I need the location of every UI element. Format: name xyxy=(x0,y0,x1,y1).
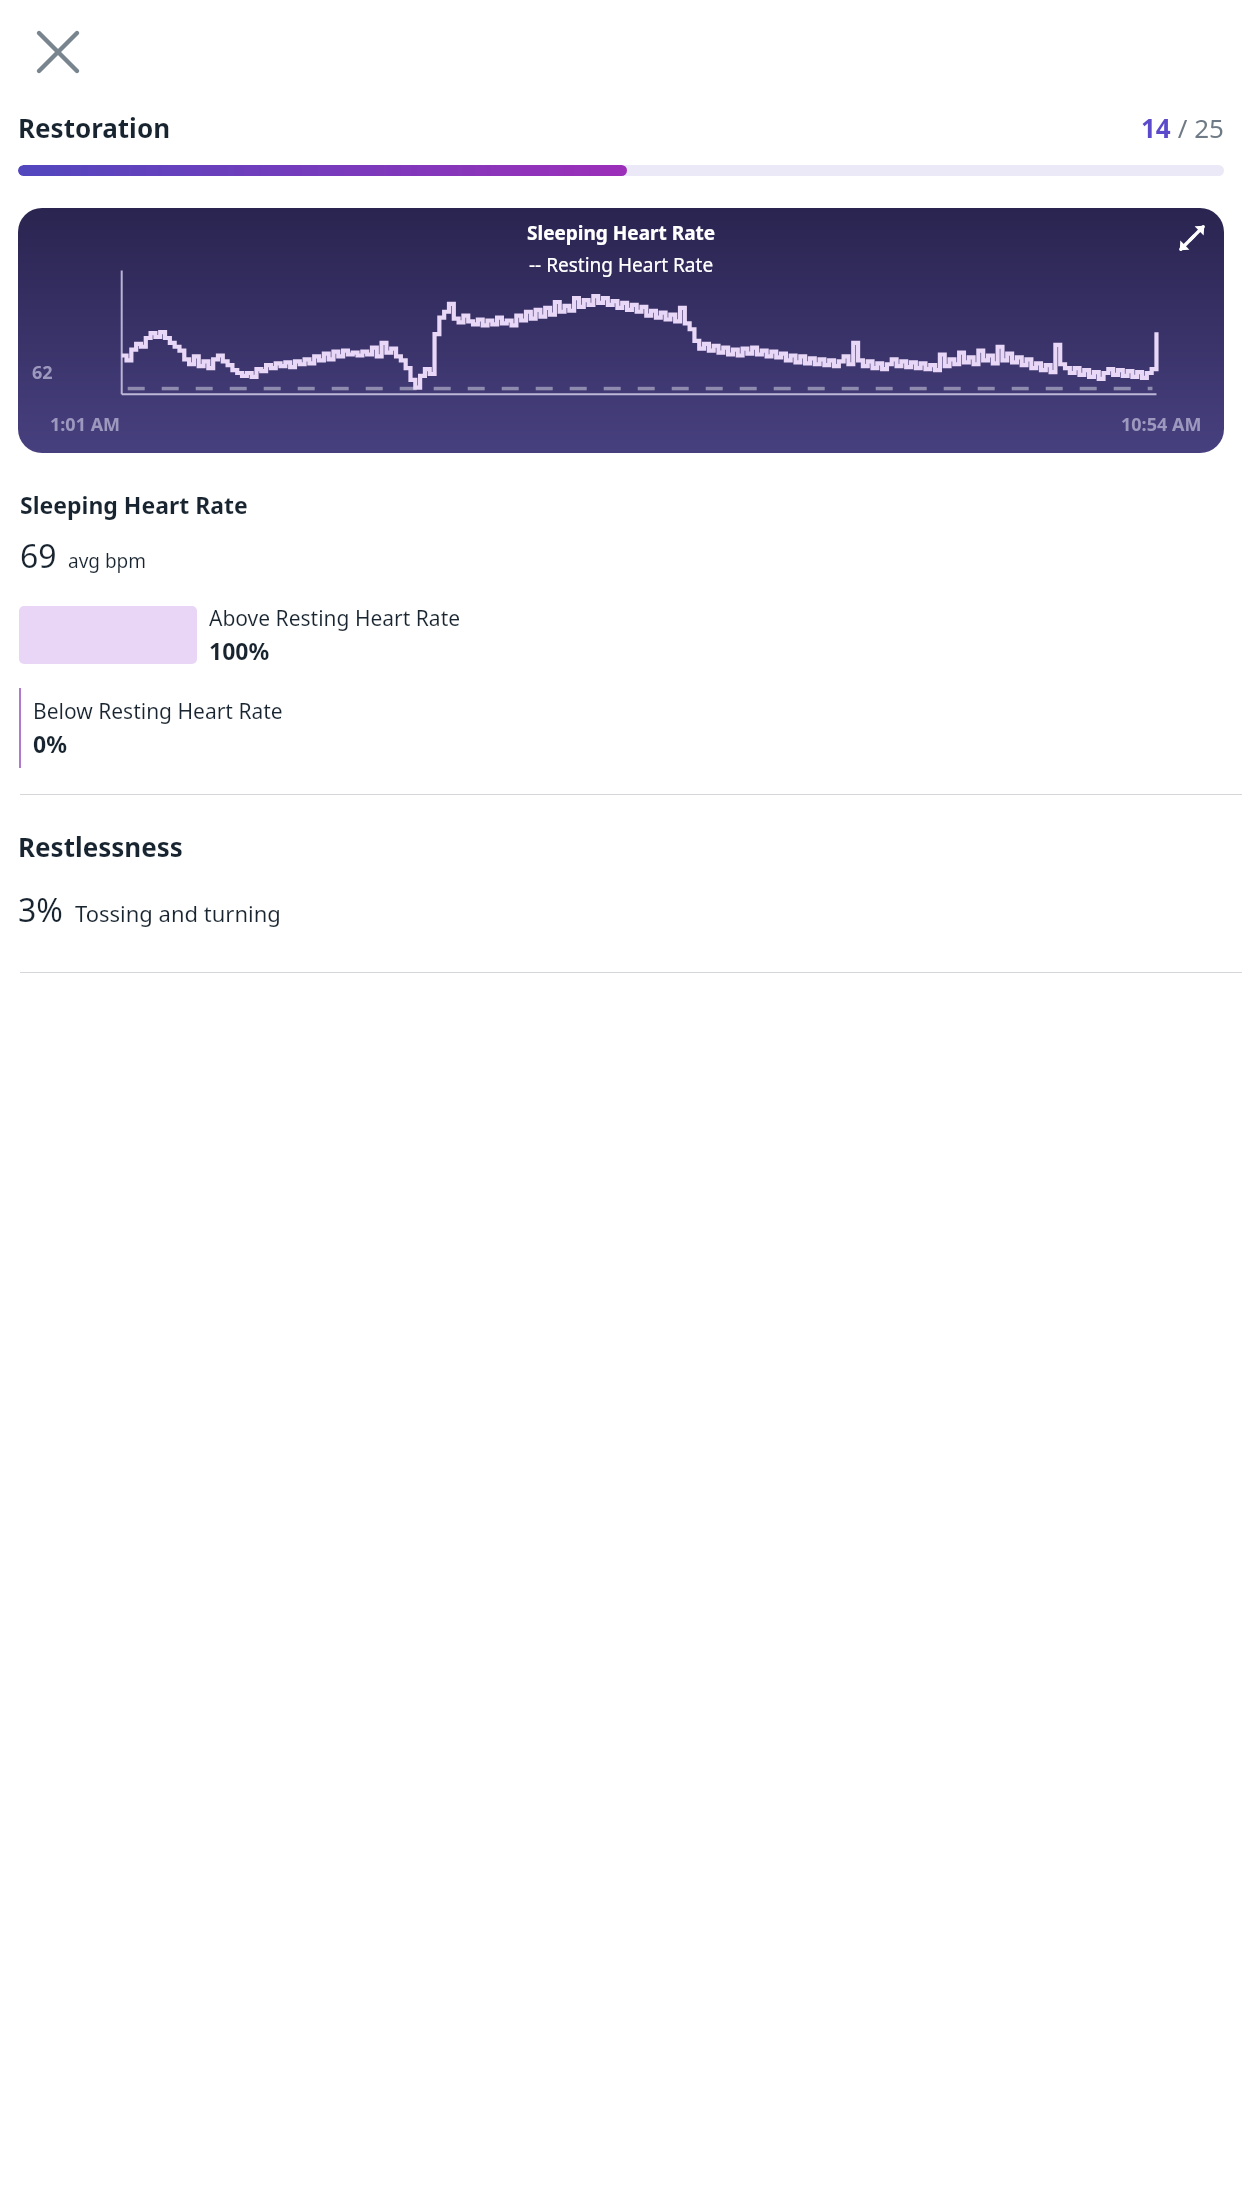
staticText: 14 xyxy=(1141,110,1171,145)
staticText: 100% xyxy=(209,635,270,666)
button[interactable]: Below Resting Heart Rate xyxy=(19,688,1222,768)
staticText: 1:01 AM xyxy=(50,412,121,437)
button[interactable]: Sleeping Heart Rate xyxy=(18,208,1224,453)
button[interactable]: Expand chart xyxy=(1170,216,1214,260)
staticText: / 25 xyxy=(1171,110,1224,145)
staticText: 69 xyxy=(20,534,57,578)
staticText: 10:54 AM xyxy=(1121,412,1202,437)
staticText: 62 xyxy=(32,360,53,385)
staticText: avg bpm xyxy=(68,548,147,574)
staticText: Restlessness xyxy=(18,829,183,864)
staticText: 0% xyxy=(33,728,67,759)
staticText: 3% xyxy=(18,888,63,932)
staticText: -- Resting Heart Rate xyxy=(529,252,714,278)
staticText: Tossing and turning xyxy=(75,898,281,928)
button[interactable]: Close xyxy=(22,16,94,88)
staticText: Restoration xyxy=(18,110,171,145)
staticText: Sleeping Heart Rate xyxy=(527,220,716,246)
staticText: Sleeping Heart Rate xyxy=(20,489,248,520)
button[interactable]: Above Resting Heart Rate xyxy=(19,604,1222,666)
staticText: Above Resting Heart Rate xyxy=(209,604,461,633)
staticText: Below Resting Heart Rate xyxy=(33,697,283,726)
